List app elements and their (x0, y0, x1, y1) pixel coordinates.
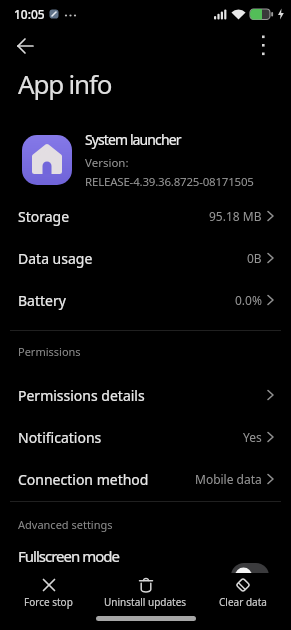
staticText: Permissions (18, 344, 81, 359)
staticText: RELEASE-4.39.36.8725-08171505 (85, 174, 254, 190)
staticText: Storage (18, 207, 70, 226)
staticText: System launcher (85, 130, 181, 149)
staticText: App info (18, 66, 112, 101)
button[interactable] (256, 34, 270, 58)
staticText: Battery (18, 291, 66, 310)
staticText: 0.0% (235, 292, 262, 308)
button[interactable]: Permissions details (0, 374, 291, 416)
button[interactable] (17, 38, 39, 54)
button[interactable]: Notifications (0, 416, 291, 458)
staticText: Clear data (219, 595, 267, 609)
button[interactable]: Fullscreen mode (0, 539, 291, 573)
staticText: 10:05 (14, 6, 45, 22)
staticText: 95.18 MB (209, 208, 262, 224)
staticText: Mobile data (195, 471, 262, 487)
staticText: Connection method (18, 470, 149, 489)
staticText: Fullscreen mode (18, 546, 119, 566)
button[interactable]: Data usage (0, 237, 291, 279)
staticText: 0B (247, 250, 262, 266)
button[interactable]: Clear data (194, 573, 291, 630)
button[interactable]: Force stop (0, 573, 97, 630)
button[interactable]: Battery (0, 279, 291, 321)
staticText: Permissions details (18, 386, 145, 405)
staticText: Advanced settings (18, 517, 113, 532)
staticText: Yes (243, 429, 262, 445)
staticText: Uninstall updates (104, 595, 187, 609)
button[interactable]: Uninstall updates (97, 573, 194, 630)
staticText: Force stop (24, 595, 73, 609)
button[interactable]: Connection method (0, 458, 291, 500)
staticText: Notifications (18, 428, 102, 447)
staticText: Version: (85, 155, 129, 171)
staticText: Data usage (18, 249, 93, 268)
button[interactable]: Storage (0, 195, 291, 237)
